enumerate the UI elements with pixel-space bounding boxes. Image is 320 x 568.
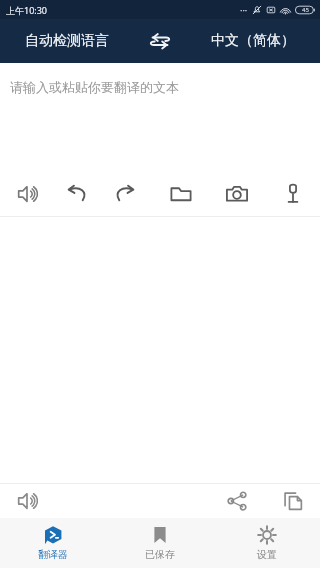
staticText: 自动检测语言 (25, 32, 109, 50)
staticText: 请输入或粘贴你要翻译的文本 (10, 79, 179, 95)
button[interactable]: 翻译器 (0, 518, 106, 568)
button[interactable]: Speak translation (10, 484, 44, 518)
button[interactable]: 中文（简体） (186, 19, 320, 63)
button[interactable]: Speak source (10, 177, 44, 211)
staticText: ··· (240, 4, 248, 16)
staticText: 翻译器 (38, 548, 68, 561)
button[interactable]: 请输入或粘贴你要翻译的文本 (0, 63, 320, 171)
button[interactable]: Microphone (276, 177, 310, 211)
button[interactable]: Undo (60, 177, 94, 211)
button[interactable]: Open file (164, 177, 198, 211)
staticText: 设置 (257, 548, 277, 561)
button[interactable]: Swap languages (134, 19, 186, 63)
button[interactable]: 设置 (213, 518, 320, 568)
staticText: 45 (302, 6, 309, 14)
staticText: 已保存 (145, 548, 175, 561)
button[interactable]: Redo (108, 177, 142, 211)
button[interactable]: Camera (220, 177, 254, 211)
staticText: 中文（简体） (211, 32, 295, 50)
button[interactable]: Share (220, 484, 254, 518)
button[interactable]: 自动检测语言 (0, 19, 134, 63)
staticText: 上午10:30 (6, 4, 48, 16)
button[interactable]: 已保存 (106, 518, 213, 568)
button[interactable]: Copy (276, 484, 310, 518)
